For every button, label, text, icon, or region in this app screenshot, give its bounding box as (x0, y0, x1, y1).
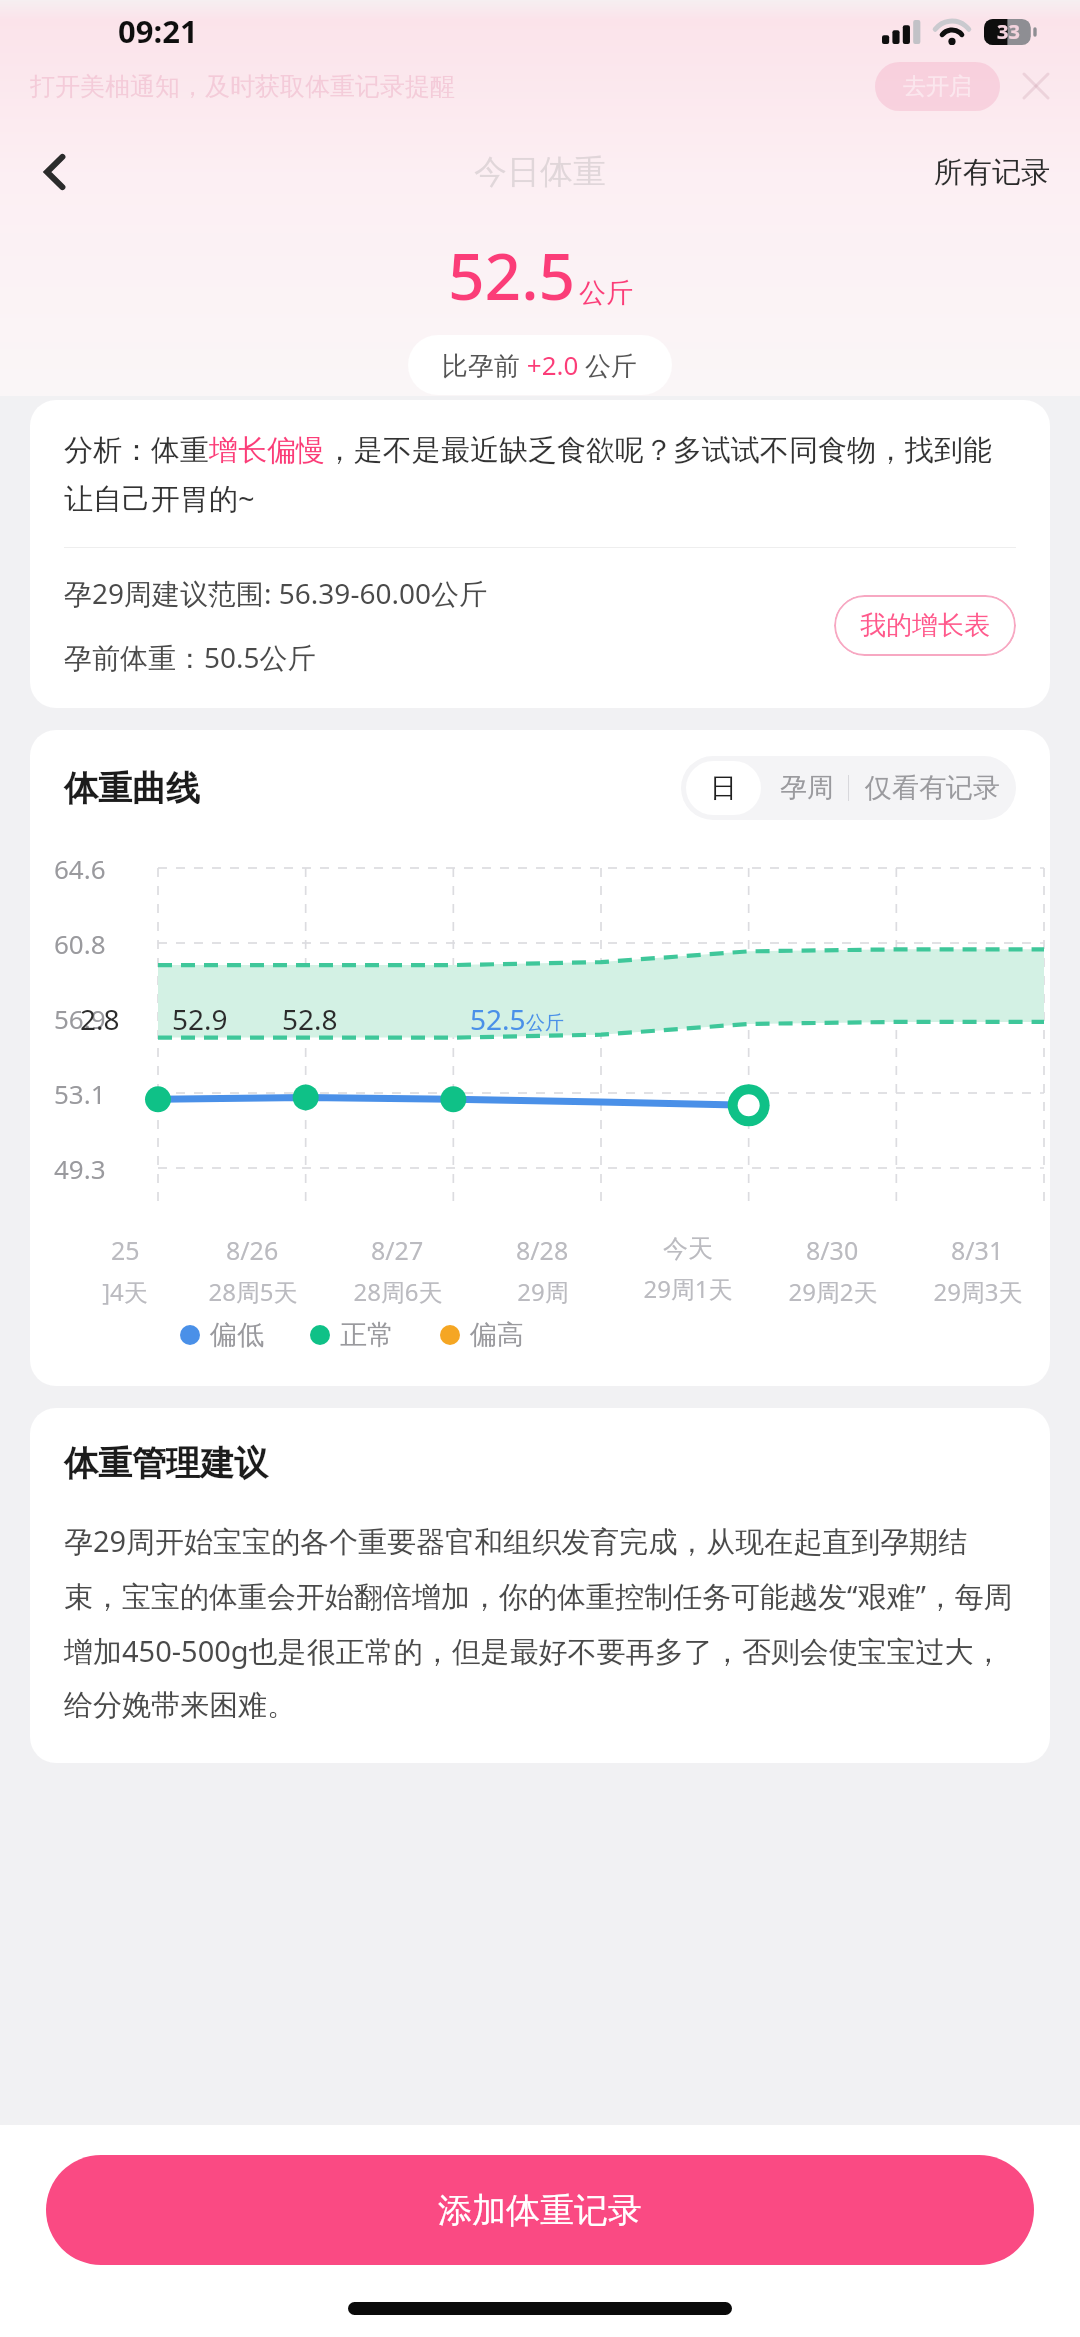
staticText: 8/26 (226, 1233, 279, 1267)
staticText: 8/27 (371, 1233, 424, 1267)
button[interactable]: 日 (686, 761, 761, 815)
staticText: 52.9 (172, 1000, 228, 1038)
button[interactable]: 关闭 (1014, 64, 1058, 108)
staticText: 我的增长表 (860, 609, 990, 642)
button[interactable]: 孕周 (766, 756, 848, 820)
button[interactable]: 添加体重记录 (46, 2155, 1034, 2265)
staticText: 8/31 (951, 1233, 1004, 1267)
staticText: 29周1天 (643, 1272, 733, 1305)
staticText: 去开启 (903, 72, 972, 101)
staticText: 8/30 (806, 1233, 859, 1267)
staticText: 孕前体重：50.5公斤 (64, 638, 316, 676)
staticText: 孕周 (780, 771, 834, 805)
staticText: 28周5天 (208, 1275, 298, 1308)
staticText: 分析：体重增长偏慢，是不是最近缺乏食欲呢？多试试不同食物，找到能让自己开胃的~ (64, 432, 1016, 517)
staticText: 52.8 (282, 1000, 338, 1038)
staticText: 偏高 (470, 1318, 524, 1352)
staticText: 52.5 (448, 232, 576, 319)
button[interactable]: 去开启 (875, 62, 1000, 111)
staticText: 添加体重记录 (438, 2189, 642, 2232)
staticText: 体重管理建议 (64, 1442, 268, 1485)
button[interactable]: 比孕前 +2.0 公斤 (408, 335, 672, 395)
staticText: 28周6天 (353, 1275, 443, 1308)
staticText: 孕29周建议范围: 56.39-60.00公斤 (64, 574, 487, 612)
staticText: 56.9 (54, 1001, 106, 1036)
button[interactable]: 我的增长表 (834, 595, 1016, 656)
staticText: 53.1 (54, 1076, 106, 1111)
staticText: 正常 (340, 1318, 394, 1352)
button[interactable]: 仅看有记录 (849, 756, 1016, 820)
staticText: 公斤 (579, 276, 633, 310)
staticText: 孕29周开始宝宝的各个重要器官和组织发育完成，从现在起直到孕期结束，宝宝的体重会… (64, 1521, 1016, 1723)
staticText: 仅看有记录 (865, 771, 1000, 805)
staticText: 49.3 (54, 1151, 106, 1186)
staticText: 今天 (663, 1233, 713, 1264)
staticText: 2.8 (80, 1000, 120, 1038)
staticText: 25 (111, 1233, 140, 1267)
staticText: 偏低 (210, 1318, 264, 1352)
staticText: 比孕前 +2.0 公斤 (442, 347, 638, 383)
button[interactable]: 所有记录 (904, 138, 1080, 207)
staticText: 29周3天 (933, 1275, 1023, 1308)
staticText: 29周 (517, 1275, 569, 1308)
staticText: 日 (710, 771, 737, 805)
staticText: 33 (997, 18, 1020, 45)
staticText: 29周2天 (788, 1275, 878, 1308)
staticText: 52.5 (470, 1000, 526, 1038)
staticText: 8/28 (516, 1233, 569, 1267)
staticText: 所有记录 (934, 154, 1050, 191)
staticText: 体重曲线 (64, 767, 200, 810)
staticText: 公斤 (526, 1011, 564, 1035)
staticText: ]4天 (102, 1275, 148, 1308)
staticText: 今日体重 (474, 151, 606, 193)
staticText: 09:21 (118, 10, 198, 52)
staticText: 64.6 (54, 851, 106, 886)
button[interactable]: 返回 (20, 136, 92, 208)
staticText: 打开美柚通知，及时获取体重记录提醒 (30, 71, 455, 102)
staticText: 60.8 (54, 926, 106, 961)
